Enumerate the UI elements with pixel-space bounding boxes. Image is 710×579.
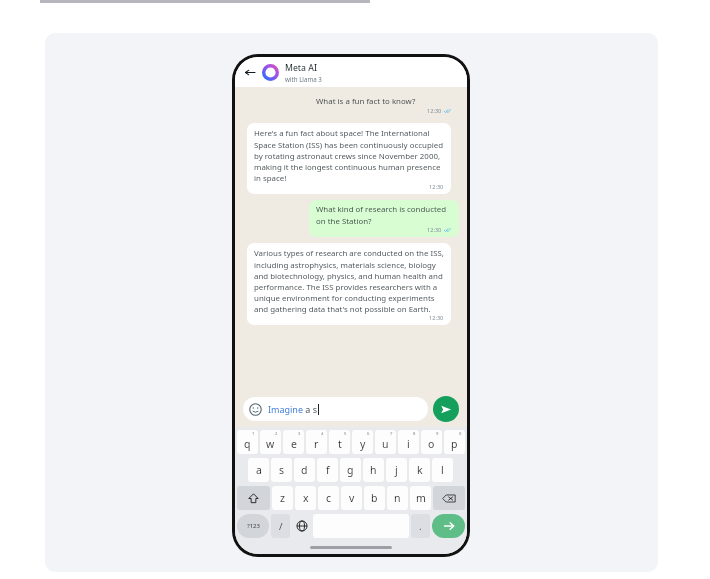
button[interactable]: n — [387, 486, 408, 510]
staticText: 12:30 — [429, 183, 444, 191]
staticText: b — [371, 491, 378, 505]
button[interactable]: Enter — [432, 514, 465, 538]
staticText: p — [451, 437, 458, 451]
button[interactable]: 6 — [352, 430, 373, 454]
button[interactable]: c — [318, 486, 339, 510]
button[interactable]: ?123 — [237, 514, 269, 538]
button[interactable]: s — [271, 458, 292, 482]
button[interactable]: What is a fun fact to know? — [309, 92, 459, 118]
button[interactable]: 0 — [444, 430, 465, 454]
staticText: v — [349, 491, 355, 505]
staticText: i — [407, 437, 410, 451]
button[interactable]: z — [272, 486, 293, 510]
staticText: What kind of research is conducted on th… — [316, 204, 452, 226]
staticText: 12:30 — [429, 314, 444, 322]
staticText: e — [291, 437, 297, 451]
staticText: o — [428, 437, 435, 451]
button[interactable]: l — [432, 458, 453, 482]
staticText: 0 — [459, 431, 462, 437]
staticText: h — [370, 463, 377, 477]
staticText: g — [347, 463, 354, 477]
staticText: r — [314, 437, 319, 451]
staticText: j — [395, 463, 398, 477]
staticText: 12:30 — [427, 107, 442, 115]
button[interactable]: 4 — [306, 430, 327, 454]
button[interactable]: Change language — [292, 514, 311, 538]
button[interactable]: 9 — [421, 430, 442, 454]
staticText: t — [338, 437, 342, 451]
staticText: k — [417, 463, 423, 477]
staticText: 6 — [367, 431, 370, 437]
button[interactable]: / — [271, 514, 290, 538]
button[interactable]: 7 — [375, 430, 396, 454]
button[interactable]: b — [364, 486, 385, 510]
staticText: Meta AI — [285, 62, 317, 74]
button[interactable]: Imagine a s — [243, 397, 428, 421]
staticText: Imagine a s — [268, 403, 318, 415]
button[interactable]: Backspace — [433, 486, 465, 510]
button[interactable]: 2 — [260, 430, 281, 454]
staticText: What is a fun fact to know? — [316, 96, 416, 107]
staticText: s — [279, 463, 285, 477]
staticText: q — [244, 437, 251, 451]
button[interactable]: 1 — [237, 430, 258, 454]
staticText: y — [360, 437, 366, 451]
staticText: 12:30 — [427, 226, 442, 234]
button[interactable]: f — [317, 458, 338, 482]
button[interactable]: Various types of research are conducted … — [247, 243, 451, 325]
staticText: ?123 — [247, 522, 260, 530]
button[interactable]: Shift — [237, 486, 270, 510]
staticText: f — [326, 463, 330, 477]
staticText: with Llama 3 — [285, 75, 322, 83]
staticText: m — [416, 491, 426, 505]
staticText: z — [280, 491, 285, 505]
button[interactable]: Send — [433, 396, 459, 422]
staticText: d — [301, 463, 308, 477]
button[interactable]: 5 — [329, 430, 350, 454]
staticText: 1 — [252, 431, 255, 437]
staticText: 5 — [344, 431, 347, 437]
staticText: 3 — [298, 431, 301, 437]
button[interactable]: k — [409, 458, 430, 482]
staticText: 7 — [390, 431, 393, 437]
staticText: n — [394, 491, 401, 505]
button[interactable]: 3 — [283, 430, 304, 454]
button[interactable]: x — [295, 486, 316, 510]
button[interactable]: m — [410, 486, 431, 510]
staticText: l — [441, 463, 444, 477]
staticText: Various types of research are conducted … — [254, 248, 444, 314]
button[interactable]: What kind of research is conducted on th… — [309, 200, 459, 237]
staticText: x — [303, 491, 309, 505]
staticText: Here's a fun fact about space! The Inter… — [254, 128, 444, 183]
staticText: 4 — [321, 431, 324, 437]
button[interactable]: Back — [241, 63, 259, 81]
staticText: a — [256, 463, 262, 477]
button[interactable]: a — [248, 458, 269, 482]
button[interactable]: v — [341, 486, 362, 510]
staticText: c — [326, 491, 332, 505]
staticText: 9 — [436, 431, 439, 437]
staticText: u — [382, 437, 389, 451]
button[interactable]: . — [411, 514, 430, 538]
staticText: 8 — [413, 431, 416, 437]
button[interactable]: d — [294, 458, 315, 482]
staticText: w — [266, 437, 275, 451]
staticText: 2 — [275, 431, 278, 437]
staticText: / — [279, 520, 283, 533]
button[interactable]: Here's a fun fact about space! The Inter… — [247, 123, 451, 194]
button[interactable]: 8 — [398, 430, 419, 454]
button[interactable]: Meta AI — [285, 62, 322, 83]
staticText: . — [419, 520, 422, 533]
button[interactable]: j — [386, 458, 407, 482]
button[interactable]: h — [363, 458, 384, 482]
button[interactable]: g — [340, 458, 361, 482]
